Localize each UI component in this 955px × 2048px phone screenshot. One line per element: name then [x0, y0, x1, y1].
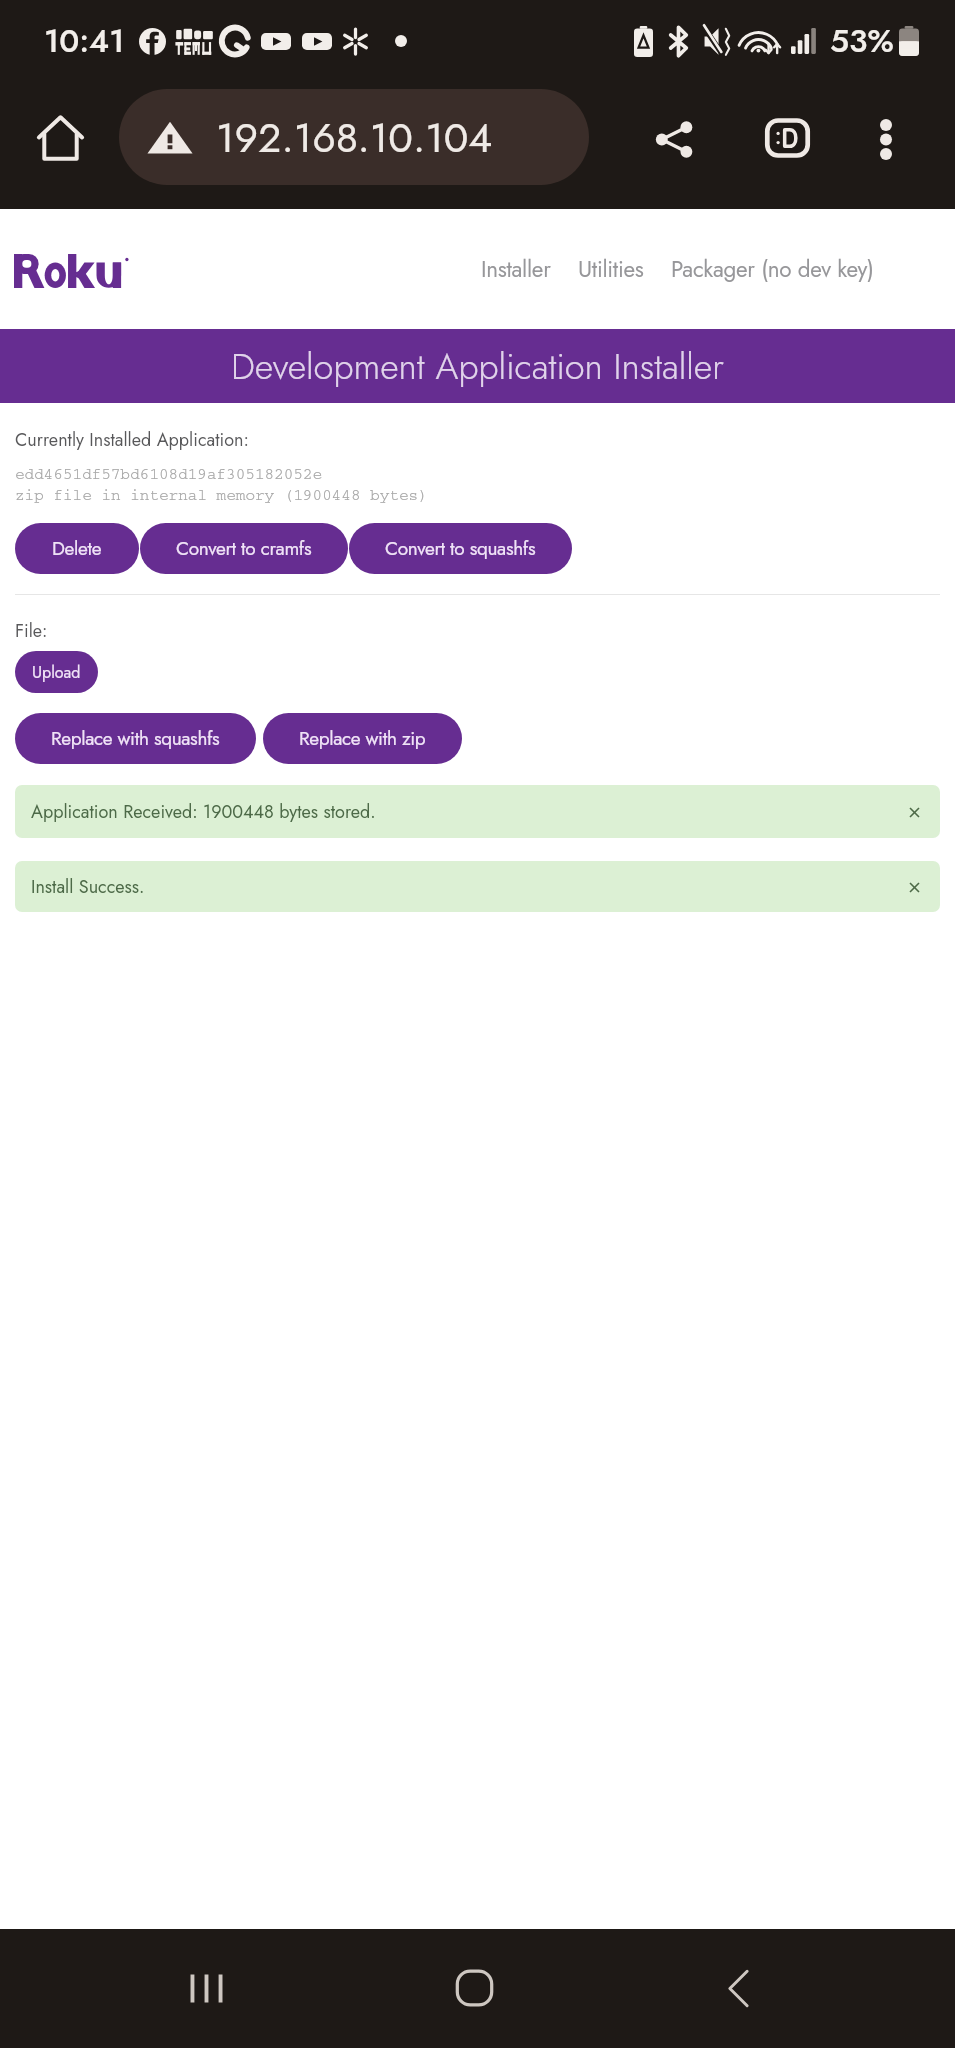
staticText: 10:41 [44, 18, 125, 64]
staticText: Packager (no dev key) [671, 253, 874, 286]
staticText: edd4651df57bd6108d19af305182052e [15, 466, 323, 484]
staticText: Upload [32, 661, 81, 684]
button[interactable]: Upload [15, 651, 98, 693]
staticText: zip file in internal memory (1900448 byt… [15, 487, 428, 505]
staticText: Application Received: 1900448 bytes stor… [31, 799, 376, 825]
button[interactable]: Delete [15, 523, 139, 574]
button[interactable]: Home [22, 99, 98, 175]
button[interactable]: Replace with zip [263, 713, 462, 764]
staticText: 192.168.10.104 [216, 108, 493, 167]
button[interactable]: Packager (no dev key) [671, 245, 874, 294]
staticText: Currently Installed Application: [15, 427, 249, 453]
button[interactable]: Replace with squashfs [15, 713, 256, 764]
button[interactable]: Recent apps [148, 1946, 264, 2030]
staticText: Installer [481, 253, 551, 286]
button[interactable]: Convert to squashfs [349, 523, 572, 574]
staticText: File: [15, 618, 48, 644]
button[interactable]: Share [635, 100, 713, 178]
button[interactable]: Roku home [14, 252, 124, 286]
button[interactable]: Tabs [748, 99, 826, 177]
staticText: Delete [52, 535, 102, 562]
staticText: Convert to cramfs [176, 535, 312, 562]
staticText: Development Application Installer [231, 340, 724, 392]
staticText: 53% [830, 18, 894, 64]
button[interactable]: 192.168.10.104 [119, 89, 589, 185]
staticText: Replace with squashfs [51, 725, 220, 752]
staticText: Replace with zip [299, 725, 426, 752]
button[interactable]: Dismiss [901, 874, 927, 900]
staticText: Install Success. [31, 874, 145, 900]
button[interactable]: Home [416, 1946, 532, 2030]
button[interactable]: Back [680, 1946, 796, 2030]
button[interactable]: Convert to cramfs [140, 523, 348, 574]
button[interactable]: More options [847, 100, 925, 178]
staticText: Convert to squashfs [385, 535, 536, 562]
staticText: Utilities [578, 253, 644, 286]
button[interactable]: Utilities [578, 245, 644, 294]
button[interactable]: Installer [481, 245, 551, 294]
button[interactable]: Dismiss [901, 799, 927, 825]
